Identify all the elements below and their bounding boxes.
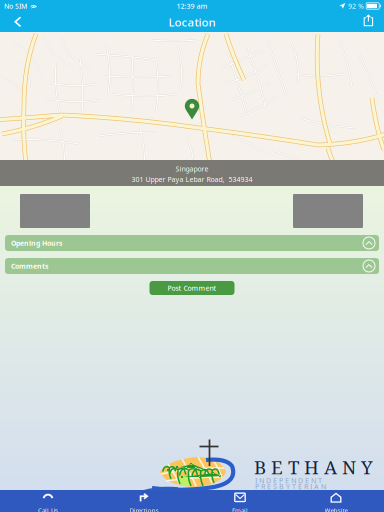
staticText: I N D E P E N D E N T (255, 476, 322, 485)
staticText: 301 Upper Paya Lebar Road, 534934 (131, 174, 252, 184)
staticText: Directions (129, 506, 158, 512)
staticText: Call Us (38, 506, 58, 512)
button[interactable]: Call Us (0, 490, 96, 512)
staticText: 12:39 am (176, 1, 207, 11)
staticText: No SIM (4, 1, 27, 11)
button[interactable]: Share (353, 12, 381, 32)
staticText: Post Comment (167, 283, 216, 293)
staticText: Singapore (175, 164, 208, 173)
button[interactable]: Email (192, 490, 288, 512)
staticText: B E T H A N Y (254, 454, 373, 480)
staticText: Website (324, 506, 347, 512)
staticText: Comments (11, 261, 48, 271)
staticText: Opening Hours (11, 238, 62, 248)
button[interactable]: Opening Hours (5, 235, 379, 251)
staticText: P R E S B Y T E R I A N (255, 482, 326, 491)
button[interactable]: Back (3, 12, 31, 32)
button[interactable]: Comments (5, 258, 379, 274)
staticText: 92 % (348, 1, 364, 11)
staticText: Email (232, 506, 248, 512)
button[interactable]: Directions (96, 490, 192, 512)
button[interactable]: Post Comment (149, 281, 234, 295)
button[interactable]: Website (288, 490, 384, 512)
staticText: Location (168, 14, 215, 30)
